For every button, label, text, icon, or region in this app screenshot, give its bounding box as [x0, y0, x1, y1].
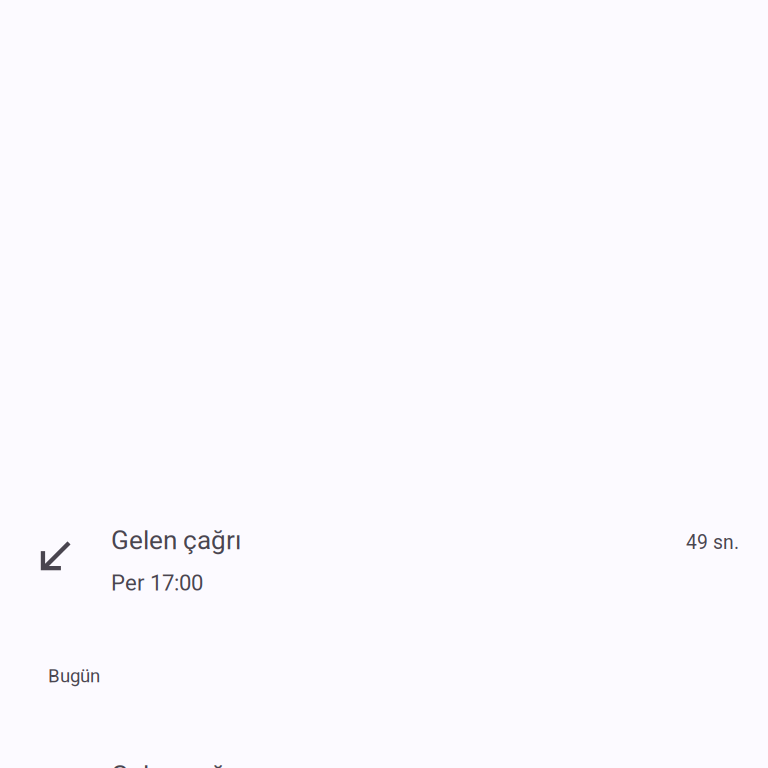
staticText: Bugün — [48, 665, 100, 687]
button[interactable]: Gelen çağrı — [0, 744, 768, 768]
staticText: Per 17:00 — [111, 570, 203, 596]
staticText: Gelen çağrı — [111, 525, 241, 556]
staticText: Gelen çağrı — [111, 760, 241, 768]
button[interactable]: Gelen çağrı — [0, 509, 768, 621]
staticText: 49 sn. — [686, 531, 739, 554]
